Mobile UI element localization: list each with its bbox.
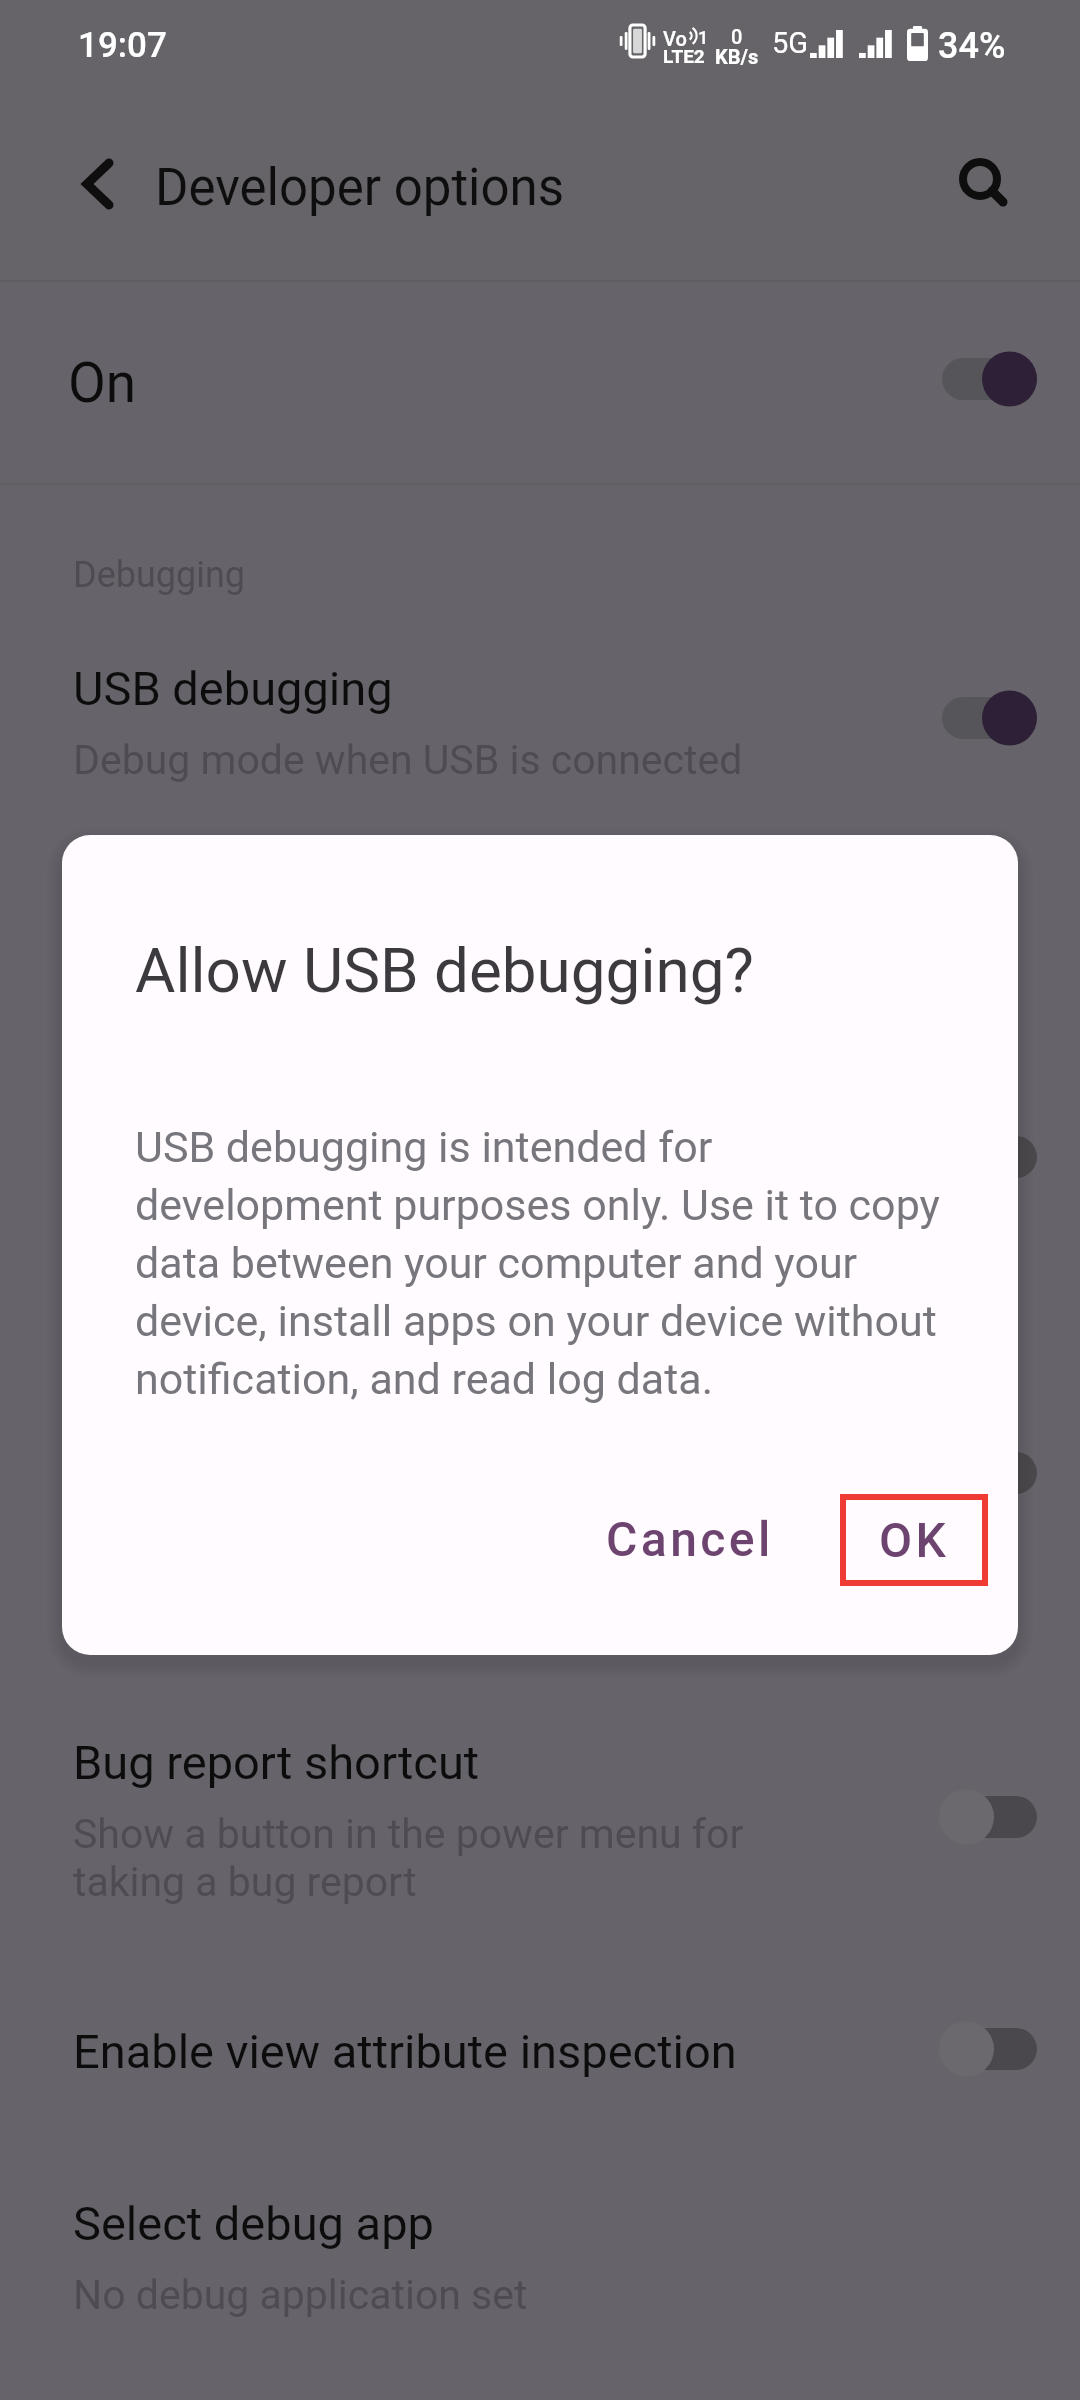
staticText: No debug application set — [73, 2271, 528, 2319]
staticText: Cancel — [606, 1511, 774, 1567]
button[interactable]: On — [0, 283, 1080, 483]
button[interactable]: Switch off — [939, 1789, 1037, 1845]
button[interactable]: Switch off — [939, 1129, 1037, 1185]
staticText: Show a button in the power menu for taki… — [73, 1810, 744, 1906]
button[interactable] — [0, 621, 1080, 811]
button[interactable]: Switch on — [939, 351, 1037, 407]
staticText: USB debugging — [73, 661, 393, 716]
button[interactable]: Switch on — [939, 690, 1037, 746]
staticText: 19:07 — [78, 25, 167, 66]
staticText: 5G — [772, 26, 809, 60]
staticText: Enable view attribute inspection — [73, 2024, 737, 2079]
staticText: Debugging — [73, 554, 246, 596]
staticText: OK — [879, 1512, 950, 1568]
button[interactable]: Switch off — [939, 2021, 1037, 2077]
button[interactable]: Back — [54, 138, 144, 228]
staticText: LTE2 — [663, 45, 705, 67]
staticText: Select debug app — [73, 2196, 434, 2251]
staticText: Bug report shortcut — [73, 1735, 480, 1790]
button[interactable]: Cancel — [574, 1492, 806, 1586]
staticText: Debug mode when USB is connected — [73, 736, 743, 784]
staticText: Vo — [663, 27, 687, 50]
staticText: 1 — [698, 27, 709, 48]
button[interactable]: Search — [941, 139, 1029, 227]
button[interactable] — [0, 1984, 1080, 2134]
staticText: Developer options — [155, 158, 565, 218]
staticText: Allow USB debugging? — [135, 934, 754, 1007]
button[interactable] — [0, 1695, 1080, 1885]
button[interactable]: Switch off — [939, 1445, 1037, 1501]
button[interactable] — [0, 2156, 1080, 2346]
staticText: 0 — [731, 25, 743, 48]
button[interactable]: OK — [840, 1494, 988, 1586]
staticText: USB debugging is intended for developmen… — [135, 1116, 940, 1406]
staticText: On — [68, 351, 137, 415]
staticText: KB/s — [715, 45, 759, 68]
staticText: 34% — [938, 25, 1006, 67]
